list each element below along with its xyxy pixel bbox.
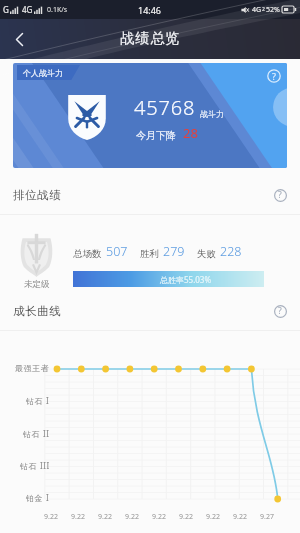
staticText: 胜利 bbox=[140, 248, 159, 260]
staticText: 今月下降 bbox=[136, 129, 176, 142]
button[interactable]: 帮助 bbox=[270, 301, 290, 321]
staticText: 未定级 bbox=[24, 279, 50, 290]
staticText: 9.22 bbox=[98, 512, 112, 522]
staticText: 4G bbox=[252, 5, 262, 15]
staticText: 45768 bbox=[134, 94, 196, 121]
staticText: 9.27 bbox=[260, 512, 274, 522]
staticText: ? bbox=[272, 70, 276, 82]
staticText: 9.22 bbox=[206, 512, 220, 522]
staticText: 0.1K/s bbox=[47, 5, 68, 15]
staticText: 总胜率55.03% bbox=[160, 274, 212, 285]
button[interactable]: 未定级 bbox=[0, 215, 300, 297]
staticText: 228 bbox=[220, 243, 242, 260]
staticText: 9.22 bbox=[179, 512, 193, 522]
staticText: 最强王者 bbox=[15, 363, 50, 373]
staticText: 钻石 II bbox=[23, 428, 50, 439]
staticText: 2 bbox=[262, 6, 265, 13]
staticText: 个人战斗力 bbox=[23, 68, 63, 78]
staticText: 279 bbox=[163, 243, 185, 260]
staticText: 9.22 bbox=[152, 512, 166, 522]
staticText: 排位战绩 bbox=[13, 188, 62, 202]
staticText: 钻石 I bbox=[26, 395, 50, 406]
staticText: 成长曲线 bbox=[13, 304, 62, 318]
staticText: G bbox=[3, 4, 9, 15]
staticText: 铂金 I bbox=[26, 492, 50, 503]
staticText: 钻石 III bbox=[20, 460, 50, 471]
staticText: 9.22 bbox=[233, 512, 247, 522]
button[interactable]: 帮助 bbox=[264, 66, 284, 86]
staticText: ? bbox=[278, 189, 282, 201]
staticText: 14:46 bbox=[138, 4, 162, 16]
button[interactable]: 返回 bbox=[0, 20, 38, 58]
staticText: 失败 bbox=[197, 248, 216, 260]
staticText: 4G bbox=[22, 4, 33, 15]
staticText: 28 bbox=[183, 124, 198, 142]
button[interactable]: 个人战斗力 bbox=[13, 63, 287, 168]
staticText: 9.22 bbox=[44, 512, 58, 522]
staticText: ? bbox=[278, 305, 282, 317]
button[interactable]: 帮助 bbox=[270, 185, 290, 205]
staticText: 战绩总览 bbox=[120, 30, 181, 48]
staticText: 52% bbox=[266, 5, 280, 15]
staticText: 9.22 bbox=[71, 512, 85, 522]
staticText: 总场数 bbox=[73, 248, 102, 260]
staticText: 9.22 bbox=[125, 512, 139, 522]
staticText: 战斗力 bbox=[200, 109, 224, 119]
staticText: 507 bbox=[106, 243, 128, 260]
